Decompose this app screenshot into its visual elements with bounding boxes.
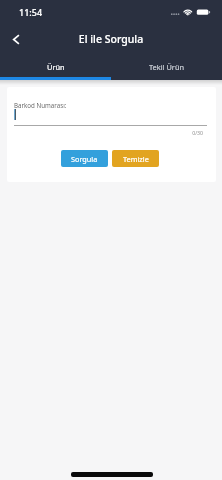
staticText: Tekil Ürün — [149, 62, 185, 72]
staticText: Barkod Numarası: — [14, 101, 67, 109]
button[interactable]: Sorgula — [61, 150, 108, 167]
button[interactable]: Tekil Ürün — [111, 56, 222, 78]
button[interactable]: Back — [3, 26, 29, 52]
staticText: 11:54 — [19, 6, 43, 18]
staticText: Ürün — [47, 62, 65, 72]
staticText: El ile Sorgula — [0, 32, 222, 46]
button[interactable]: Temizle — [112, 150, 159, 167]
button[interactable]: Ürün — [0, 56, 111, 78]
staticText: Temizle — [123, 154, 149, 164]
staticText: 0/30 — [14, 129, 203, 136]
staticText: Sorgula — [71, 154, 98, 164]
